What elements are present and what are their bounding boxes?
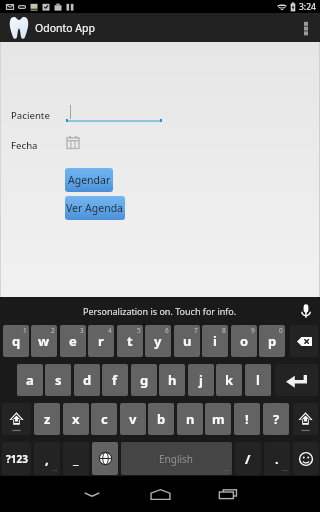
staticText: x — [72, 410, 80, 428]
staticText: … — [224, 464, 230, 474]
button[interactable]: g — [131, 364, 157, 396]
staticText: ! — [245, 410, 249, 428]
button[interactable]: c — [91, 403, 117, 435]
staticText: v — [129, 410, 137, 428]
staticText: 1 — [23, 326, 27, 335]
staticText: g — [140, 371, 149, 389]
staticText: 3:24 — [299, 1, 316, 13]
button[interactable]: q — [3, 325, 29, 357]
staticText: English — [159, 452, 194, 466]
staticText: d — [83, 371, 92, 389]
button[interactable]: i — [202, 325, 228, 357]
button[interactable]: / — [235, 442, 261, 475]
button[interactable]: Shift — [293, 403, 318, 435]
staticText: l — [256, 371, 260, 389]
button[interactable]: More options — [291, 13, 320, 42]
button[interactable]: v — [120, 403, 146, 435]
button[interactable]: English — [121, 442, 232, 475]
button[interactable]: , — [34, 442, 60, 475]
button[interactable]: a — [17, 364, 43, 396]
staticText: ?123 — [6, 452, 28, 466]
button[interactable]: k — [216, 364, 242, 396]
staticText: Agendar — [68, 173, 111, 187]
staticText: p — [268, 332, 277, 350]
staticText: i — [213, 332, 217, 350]
button[interactable]: m — [205, 403, 231, 435]
button[interactable]: Delete — [290, 325, 318, 357]
button[interactable]: Pick date — [67, 136, 79, 149]
button[interactable]: y — [145, 325, 171, 357]
button[interactable]: u — [174, 325, 200, 357]
button[interactable]: t — [117, 325, 143, 357]
staticText: n — [186, 410, 195, 428]
staticText: Ver Agenda — [66, 201, 124, 215]
button[interactable]: f — [102, 364, 128, 396]
button[interactable]: Recent apps — [206, 476, 250, 512]
other: Emoji — [299, 452, 313, 466]
button[interactable]: Voice input — [296, 301, 316, 321]
staticText: … — [282, 464, 288, 474]
button[interactable]: Shift — [2, 403, 31, 435]
other: Change language — [99, 452, 112, 465]
staticText: 3 — [80, 326, 84, 335]
button[interactable]: Agendar — [65, 168, 113, 192]
button[interactable]: j — [188, 364, 214, 396]
button[interactable]: d — [74, 364, 100, 396]
staticText: 9 — [251, 326, 255, 335]
staticText: w — [38, 332, 50, 350]
button[interactable]: r — [88, 325, 114, 357]
staticText: Fecha — [11, 139, 38, 152]
staticText: o — [240, 332, 249, 350]
other: Shift — [293, 403, 318, 435]
other: Shift — [2, 403, 31, 435]
button[interactable] — [66, 102, 162, 121]
button[interactable]: Change language — [92, 442, 118, 475]
staticText: _ — [73, 450, 79, 468]
other: Enter — [286, 375, 307, 386]
staticText: ? — [273, 410, 280, 428]
staticText: Odonto App — [35, 21, 95, 35]
staticText: e — [69, 332, 77, 350]
staticText: 0 — [279, 326, 283, 335]
button[interactable]: w — [31, 325, 57, 357]
staticText: 5 — [137, 326, 141, 335]
staticText: 7 — [194, 326, 198, 335]
staticText: m — [212, 410, 225, 428]
staticText: 8 — [222, 326, 226, 335]
button[interactable]: o — [231, 325, 257, 357]
button[interactable]: Back — [70, 476, 114, 512]
staticText: Paciente — [11, 109, 50, 122]
staticText: . — [275, 450, 279, 468]
staticText: u — [183, 332, 192, 350]
button[interactable]: ? — [263, 403, 289, 435]
button[interactable]: l — [245, 364, 271, 396]
staticText: k — [225, 371, 234, 389]
button[interactable]: Home — [138, 476, 182, 512]
button[interactable]: x — [63, 403, 89, 435]
button[interactable]: . — [264, 442, 290, 475]
staticText: z — [44, 410, 51, 428]
button[interactable]: Emoji — [293, 442, 319, 475]
button[interactable]: h — [159, 364, 185, 396]
button[interactable]: Enter — [275, 364, 318, 396]
staticText: q — [12, 332, 21, 350]
button[interactable]: s — [45, 364, 71, 396]
button[interactable]: n — [177, 403, 203, 435]
button[interactable]: ! — [234, 403, 260, 435]
staticText: b — [157, 410, 166, 428]
staticText: s — [55, 371, 62, 389]
button[interactable]: e — [60, 325, 86, 357]
staticText: r — [98, 332, 104, 350]
button[interactable]: _ — [63, 442, 89, 475]
staticText: f — [112, 371, 118, 389]
button[interactable]: ?123 — [2, 442, 31, 475]
other: Delete — [297, 337, 312, 346]
button[interactable]: Ver Agenda — [65, 196, 125, 220]
button[interactable]: z — [34, 403, 60, 435]
staticText: h — [168, 371, 177, 389]
staticText: , — [45, 450, 49, 468]
staticText: Personalization is on. Touch for info. — [83, 305, 237, 317]
button[interactable]: b — [148, 403, 174, 435]
button[interactable]: p — [259, 325, 285, 357]
staticText: 6 — [165, 326, 169, 335]
